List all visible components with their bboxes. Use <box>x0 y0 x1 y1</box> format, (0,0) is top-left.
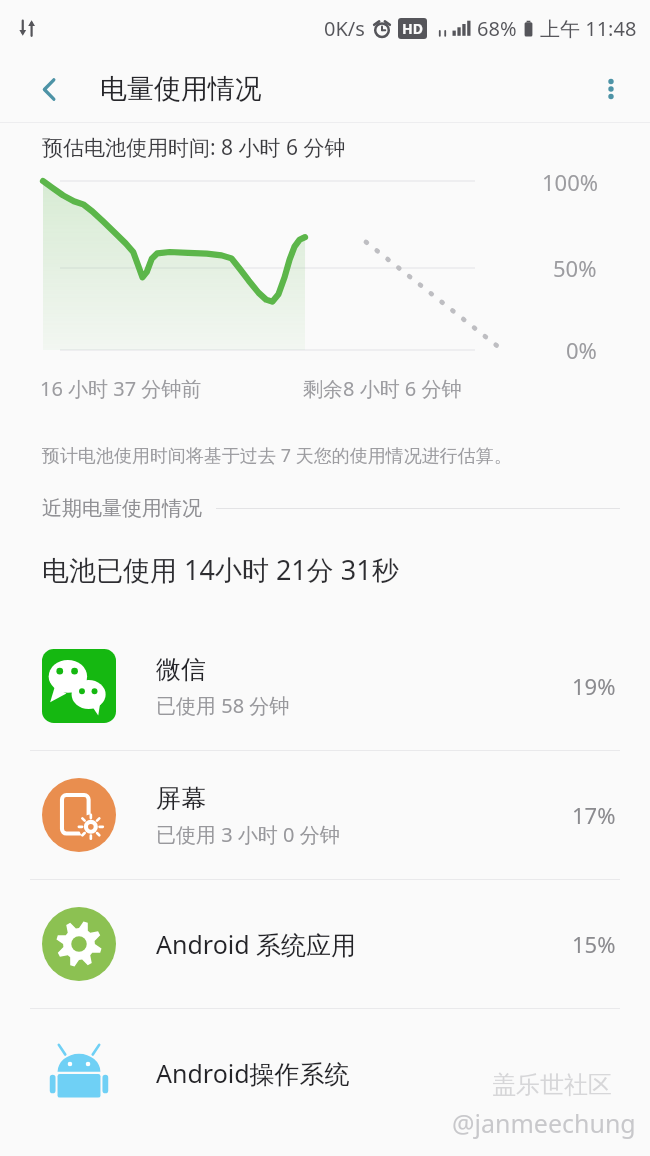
staticText: 电池已使用 14小时 21分 31秒 <box>42 551 399 588</box>
staticText: 盖乐世社区 <box>492 1070 612 1100</box>
staticText: 50% <box>553 253 597 283</box>
staticText: 16 小时 37 分钟前 <box>40 375 202 402</box>
button[interactable]: 屏幕 <box>0 751 650 879</box>
staticText: 上午 11:48 <box>540 15 637 42</box>
staticText: Android 系统应用 <box>156 927 357 961</box>
staticText: 0% <box>566 335 597 365</box>
staticText: 已使用 3 小时 0 分钟 <box>156 821 340 848</box>
staticText: 预估电池使用时间: 8 小时 6 分钟 <box>42 133 346 162</box>
staticText: 17% <box>572 800 616 830</box>
staticText: 0K/s <box>324 15 365 42</box>
staticText: 预计电池使用时间将基于过去 7 天您的使用情况进行估算。 <box>42 443 512 468</box>
button[interactable]: 微信 <box>0 622 650 750</box>
staticText: 15% <box>572 929 616 959</box>
staticText: 已使用 58 分钟 <box>156 692 290 719</box>
staticText: 微信 <box>156 654 206 685</box>
staticText: 电量使用情况 <box>100 72 262 106</box>
staticText: 剩余8 小时 6 分钟 <box>303 375 462 402</box>
button[interactable]: Back <box>26 66 72 112</box>
staticText: 近期电量使用情况 <box>42 496 202 521</box>
button[interactable]: More options <box>588 66 634 112</box>
staticText: 68% <box>477 15 517 42</box>
staticText: @janmeechung <box>452 1106 636 1140</box>
staticText: Android操作系统 <box>156 1056 350 1090</box>
button[interactable]: Android 系统应用 <box>0 880 650 1008</box>
staticText: 100% <box>542 167 599 197</box>
staticText: 屏幕 <box>156 783 206 814</box>
button[interactable]: Android操作系统 <box>0 1009 650 1137</box>
staticText: 19% <box>572 671 616 701</box>
staticText: HD <box>402 19 423 38</box>
